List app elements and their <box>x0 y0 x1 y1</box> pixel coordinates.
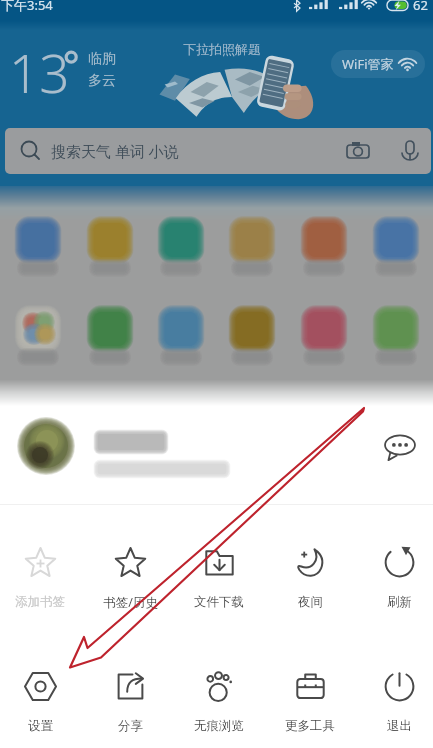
button[interactable]: Messages <box>0 404 433 500</box>
button[interactable]: 搜索天气 单词 小说 <box>5 128 431 174</box>
staticText: 下午3:54 <box>1 0 53 12</box>
button[interactable]: Camera search <box>345 138 371 164</box>
button[interactable]: 分享 <box>87 670 173 734</box>
button[interactable]: Messages <box>378 426 422 466</box>
button[interactable]: 无痕浏览 <box>176 670 262 734</box>
staticText: 夜间 <box>298 594 323 610</box>
button[interactable]: Voice search <box>397 138 423 164</box>
staticText: 分享 <box>118 718 143 734</box>
staticText: 刷新 <box>387 594 412 610</box>
button[interactable]: 退出 <box>356 670 433 734</box>
staticText: 临朐 <box>88 50 116 68</box>
button[interactable]: WiFi管家 <box>331 50 425 78</box>
staticText: 62 <box>413 0 428 12</box>
staticText: 添加书签 <box>15 594 65 610</box>
staticText: 搜索天气 单词 小说 <box>51 141 179 161</box>
staticText: WiFi管家 <box>342 55 394 73</box>
button[interactable]: 夜间 <box>267 546 353 610</box>
button[interactable]: 更多工具 <box>267 670 353 734</box>
staticText: 无痕浏览 <box>194 718 244 734</box>
staticText: 书签/历史 <box>103 594 158 611</box>
staticText: 更多工具 <box>285 718 335 734</box>
staticText: 多云 <box>88 72 116 90</box>
button[interactable]: 文件下载 <box>176 546 262 610</box>
button[interactable]: 添加书签 <box>0 546 83 610</box>
staticText: 退出 <box>387 718 412 734</box>
staticText: 13 <box>9 36 70 108</box>
staticText: 文件下载 <box>194 594 244 610</box>
button[interactable]: 刷新 <box>356 546 433 610</box>
staticText: 设置 <box>28 718 53 734</box>
button[interactable]: 书签/历史 <box>87 546 173 611</box>
staticText: 下拉拍照解题 <box>183 41 261 57</box>
button[interactable]: 设置 <box>0 670 83 734</box>
